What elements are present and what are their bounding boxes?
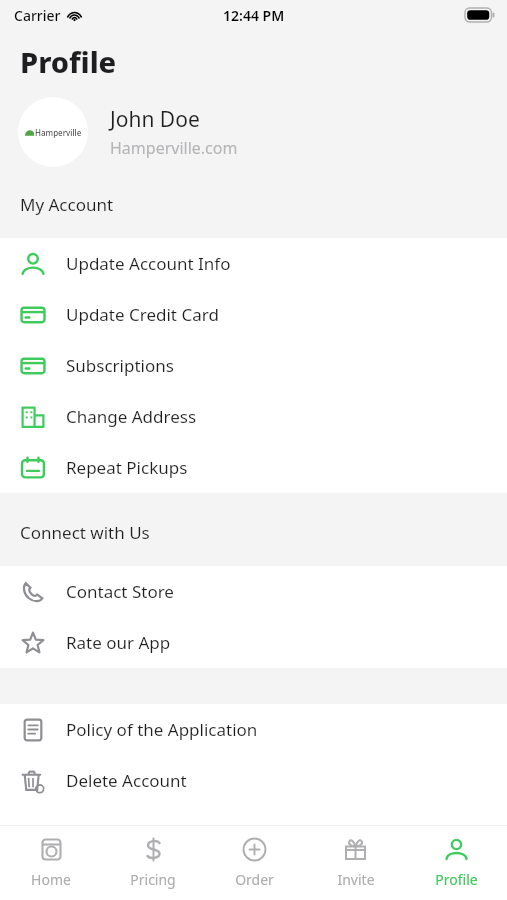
staticText: Contact Store <box>66 580 174 603</box>
staticText: Subscriptions <box>66 354 174 377</box>
staticText: Invite <box>337 870 375 889</box>
button[interactable]: Invite <box>305 826 406 900</box>
staticText: Pricing <box>130 870 176 889</box>
staticText: Hamperville.com <box>110 137 238 159</box>
staticText: Carrier <box>14 6 61 25</box>
button[interactable]: Pricing <box>102 826 204 900</box>
button[interactable]: Delete Account <box>0 755 507 806</box>
button[interactable]: Rate our App <box>0 617 507 668</box>
other: Home <box>39 837 64 862</box>
staticText: My Account <box>20 193 114 216</box>
staticText: Repeat Pickups <box>66 456 188 479</box>
staticText: John Doe <box>110 105 200 134</box>
button[interactable]: Home <box>0 826 102 900</box>
staticText: Home <box>31 870 71 889</box>
staticText: 12:44 PM <box>223 6 285 25</box>
staticText: Hamperville <box>35 127 82 138</box>
staticText: Rate our App <box>66 631 171 654</box>
button[interactable]: Profile <box>406 826 507 900</box>
button[interactable]: Hamperville <box>0 97 507 167</box>
other: Invite <box>343 837 368 862</box>
other: Profile <box>444 837 469 862</box>
staticText: Profile <box>435 870 478 889</box>
staticText: Delete Account <box>66 769 187 792</box>
staticText: Policy of the Application <box>66 718 258 741</box>
staticText: Change Address <box>66 405 197 428</box>
staticText: Update Credit Card <box>66 303 219 326</box>
staticText: Connect with Us <box>20 521 150 544</box>
button[interactable]: Policy of the Application <box>0 704 507 755</box>
staticText: Profile <box>20 42 117 81</box>
button[interactable]: Update Account Info <box>0 238 507 289</box>
other: Pricing <box>141 837 166 862</box>
staticText: Update Account Info <box>66 252 231 275</box>
button[interactable]: Contact Store <box>0 566 507 617</box>
button[interactable]: Subscriptions <box>0 340 507 391</box>
other: Order <box>242 837 267 862</box>
button[interactable]: Change Address <box>0 391 507 442</box>
staticText: Order <box>235 870 274 889</box>
button[interactable]: Order <box>204 826 305 900</box>
button[interactable]: Repeat Pickups <box>0 442 507 493</box>
button[interactable]: Update Credit Card <box>0 289 507 340</box>
